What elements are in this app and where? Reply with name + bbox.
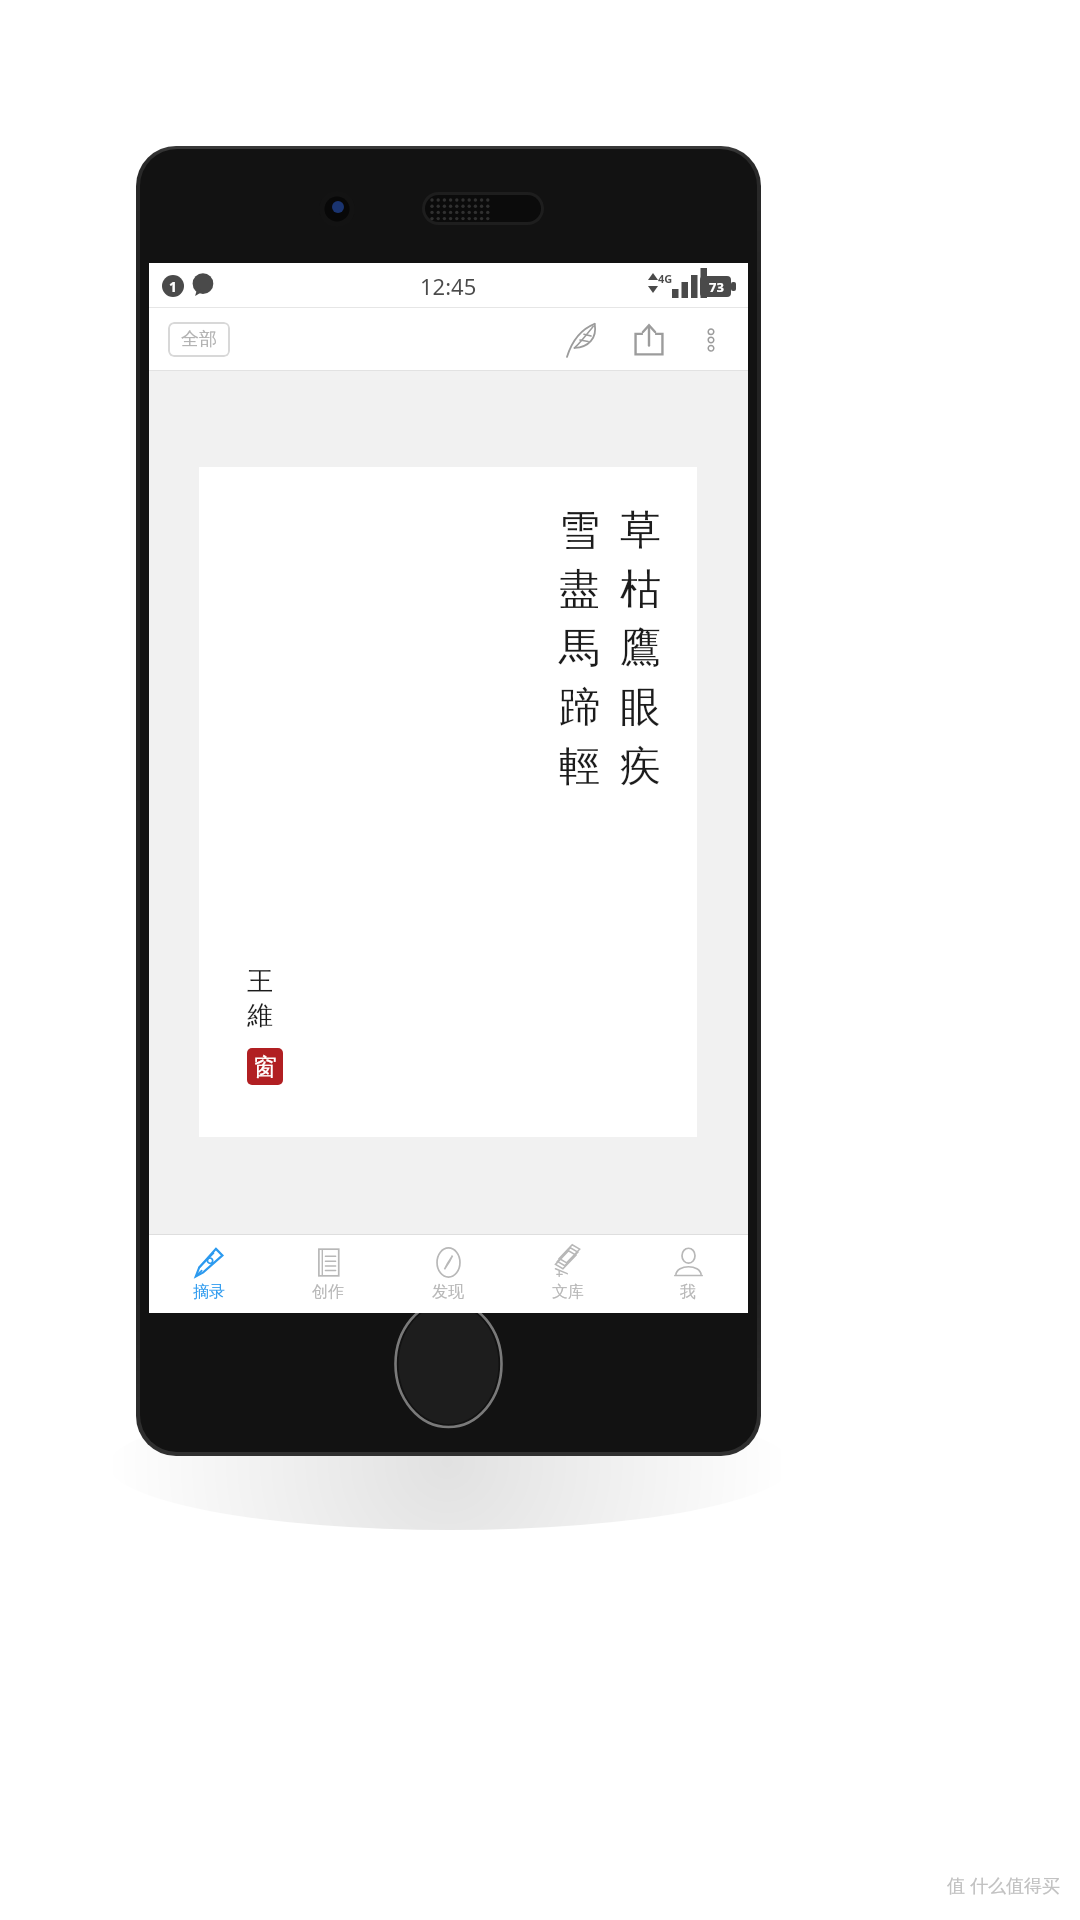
button[interactable]: More options	[686, 315, 736, 365]
staticText: 摘录	[193, 1282, 225, 1302]
button[interactable]: 雪	[199, 467, 697, 1137]
staticText: 我	[680, 1282, 696, 1302]
staticText: 什么值得买	[970, 1875, 1060, 1898]
button[interactable]: 我	[628, 1235, 748, 1313]
staticText: 蹄	[559, 682, 600, 734]
staticText: 馬	[559, 623, 600, 675]
staticText: 眼	[620, 682, 661, 734]
button[interactable]: 发现	[388, 1235, 508, 1313]
staticText: 创作	[312, 1282, 344, 1302]
staticText: 維	[247, 999, 273, 1032]
staticText: 王	[247, 965, 273, 998]
staticText: 疾	[620, 741, 661, 793]
staticText: 值	[947, 1875, 965, 1898]
button[interactable]: 创作	[268, 1235, 388, 1313]
staticText: 枯	[620, 564, 661, 616]
staticText: 雪	[559, 505, 600, 557]
staticText: 文库	[552, 1282, 584, 1302]
button[interactable]: 全部	[168, 322, 230, 357]
staticText: 发现	[432, 1282, 464, 1302]
staticText: 1	[169, 277, 178, 296]
staticText: 鷹	[620, 623, 661, 675]
staticText: 12:45	[420, 271, 477, 301]
staticText: 草	[620, 505, 661, 557]
button[interactable]: 摘录	[149, 1235, 268, 1313]
staticText: 73	[709, 278, 724, 296]
staticText: 4G	[658, 271, 673, 286]
button[interactable]: Write	[554, 313, 608, 367]
staticText: 盡	[559, 564, 600, 616]
button[interactable]: 文库	[508, 1235, 628, 1313]
staticText: 全部	[181, 328, 217, 351]
staticText: 窗	[253, 1052, 277, 1082]
button[interactable]: Share	[622, 313, 676, 367]
staticText: 輕	[559, 741, 600, 793]
